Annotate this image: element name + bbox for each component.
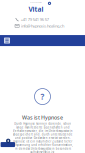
staticText: info@hypnosis-healing.ch (21, 23, 64, 29)
staticText: ? (40, 91, 44, 102)
button[interactable]: Chat (0, 0, 15, 147)
staticText: Vital (29, 5, 44, 14)
button[interactable]: info@hypnosis-healing.ch (0, 0, 64, 29)
staticText: hypnosis healing (30, 2, 42, 3)
button[interactable]: Menu (0, 35, 10, 46)
staticText: Was ist Hypnose (22, 114, 63, 121)
staticText: +41 79 541 96 57 (21, 17, 49, 22)
staticText: Durch Hypnose können störende, schon lan… (12, 122, 73, 153)
button[interactable]: +41 79 541 96 57 (0, 0, 49, 22)
